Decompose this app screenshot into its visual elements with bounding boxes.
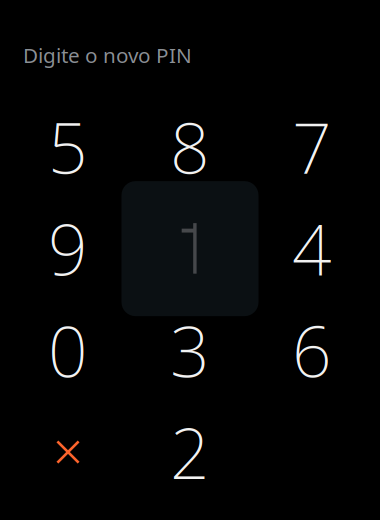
staticText: 6 xyxy=(292,304,332,396)
button[interactable]: 2 xyxy=(129,401,251,503)
button[interactable]: 6 xyxy=(251,299,373,401)
button[interactable]: 3 xyxy=(129,299,251,401)
staticText: 3 xyxy=(170,304,210,396)
button[interactable]: 0 xyxy=(7,299,129,401)
button[interactable]: 9 xyxy=(7,198,129,299)
staticText: 5 xyxy=(48,101,88,193)
button[interactable]: 7 xyxy=(251,96,373,198)
staticText: 8 xyxy=(170,101,210,193)
staticText: 0 xyxy=(48,304,88,396)
button[interactable]: 5 xyxy=(7,96,129,198)
button[interactable]: 4 xyxy=(251,198,373,299)
button[interactable]: 1 xyxy=(129,198,251,299)
staticText: 2 xyxy=(170,406,210,498)
staticText: Digite o novo PIN xyxy=(23,41,192,69)
staticText: 4 xyxy=(292,203,332,295)
staticText: 7 xyxy=(292,101,332,193)
button[interactable]: Apagar xyxy=(7,401,129,503)
button[interactable]: 8 xyxy=(129,96,251,198)
staticText: 9 xyxy=(48,203,88,295)
